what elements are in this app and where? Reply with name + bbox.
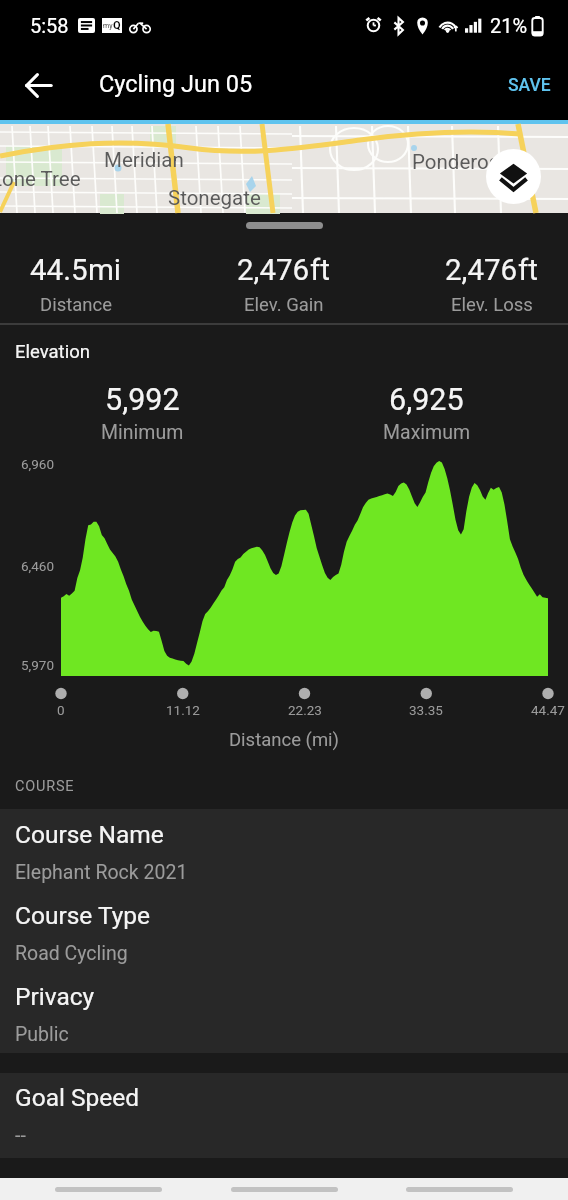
staticText: Elevation bbox=[15, 341, 90, 363]
staticText: 5:58 bbox=[30, 14, 69, 37]
button[interactable]: Course Name bbox=[0, 809, 568, 889]
staticText: Meridian bbox=[104, 148, 184, 172]
staticText: Goal Speed bbox=[15, 1083, 140, 1112]
staticText: Maximum bbox=[383, 421, 470, 444]
staticText: -- bbox=[15, 1124, 26, 1147]
button[interactable]: Navigation bbox=[55, 1187, 162, 1192]
staticText: 6,960 bbox=[21, 456, 55, 472]
button[interactable]: Goal Speed bbox=[0, 1073, 568, 1153]
staticText: Road Cycling bbox=[15, 942, 128, 965]
staticText: ft bbox=[518, 253, 538, 288]
staticText: COURSE bbox=[15, 778, 75, 795]
staticText: Distance (mi) bbox=[0, 729, 568, 751]
staticText: ft bbox=[310, 253, 330, 288]
staticText: 2,476 bbox=[445, 253, 518, 288]
staticText: my bbox=[103, 22, 113, 30]
staticText: Elev. Gain bbox=[244, 294, 324, 316]
staticText: mi bbox=[88, 253, 122, 288]
staticText: Course Type bbox=[15, 901, 151, 930]
staticText: Stonegate bbox=[168, 186, 261, 210]
staticText: Public bbox=[15, 1023, 69, 1046]
staticText: 5,970 bbox=[21, 657, 55, 673]
staticText: 21% bbox=[490, 14, 528, 37]
staticText: 33.35 bbox=[409, 702, 443, 718]
staticText: 11.12 bbox=[166, 702, 200, 718]
staticText: Cycling Jun 05 bbox=[99, 70, 253, 98]
staticText: 0 bbox=[57, 702, 65, 718]
staticText: 22.23 bbox=[288, 702, 322, 718]
staticText: Elev. Loss bbox=[451, 294, 533, 316]
staticText: 6,460 bbox=[21, 558, 55, 574]
button[interactable]: Map layers bbox=[486, 149, 541, 204]
staticText: Privacy bbox=[15, 982, 95, 1011]
staticText: Minimum bbox=[101, 421, 184, 444]
staticText: Course Name bbox=[15, 820, 164, 849]
staticText: Lone Tree bbox=[0, 167, 81, 191]
staticText: 44.47 bbox=[531, 702, 565, 718]
button[interactable]: Privacy bbox=[0, 971, 568, 1051]
staticText: 44.5 bbox=[30, 253, 88, 288]
button[interactable]: Back bbox=[15, 62, 61, 108]
button[interactable]: SAVE bbox=[491, 61, 568, 110]
staticText: 2,476 bbox=[237, 253, 310, 288]
staticText: 6,925 bbox=[389, 382, 464, 418]
staticText: Distance bbox=[40, 294, 113, 316]
button[interactable]: Navigation bbox=[231, 1187, 338, 1192]
button[interactable]: Navigation bbox=[406, 1187, 513, 1192]
staticText: Ponderosa bbox=[412, 150, 511, 174]
staticText: Q bbox=[113, 19, 121, 32]
staticText: 5,992 bbox=[105, 382, 180, 418]
staticText: SAVE bbox=[508, 75, 551, 96]
button[interactable]: Course Type bbox=[0, 890, 568, 970]
staticText: Elephant Rock 2021 bbox=[15, 861, 188, 884]
